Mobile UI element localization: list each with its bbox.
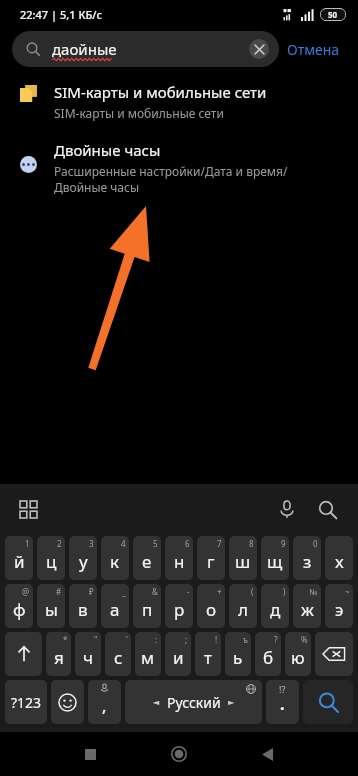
- staticText: й: [14, 550, 25, 573]
- button[interactable]: _: [101, 584, 129, 628]
- button[interactable]: №: [293, 584, 321, 628]
- staticText: !: [215, 634, 218, 645]
- button[interactable]: ?123: [5, 680, 47, 724]
- button[interactable]: даойные: [12, 31, 279, 67]
- button[interactable]: (: [229, 584, 257, 628]
- staticText: 0: [313, 538, 318, 549]
- button[interactable]: Home: [159, 734, 199, 774]
- staticText: 6: [185, 538, 190, 549]
- button[interactable]: 3: [69, 536, 97, 580]
- button[interactable]: 6: [165, 536, 193, 580]
- staticText: ": [94, 634, 98, 645]
- staticText: №: [309, 586, 318, 597]
- staticText: п: [142, 598, 153, 621]
- button[interactable]: 1: [5, 536, 33, 580]
- staticText: ►: [228, 698, 235, 707]
- staticText: ы: [45, 598, 58, 621]
- staticText: %: [301, 634, 308, 645]
- button[interactable]: Recents: [70, 734, 110, 774]
- button[interactable]: 9: [261, 536, 289, 580]
- button[interactable]: Search: [303, 680, 353, 724]
- staticText: :: [155, 634, 158, 645]
- button[interactable]: 5: [133, 536, 161, 580]
- button[interactable]: *: [46, 632, 71, 676]
- button[interactable]: ~: [325, 584, 353, 628]
- button[interactable]: 0: [293, 536, 321, 580]
- staticText: 22:47 | 5,1 КБ/с: [20, 7, 103, 22]
- staticText: б: [263, 646, 274, 669]
- button[interactable]: ": [75, 632, 101, 676]
- button[interactable]: &: [133, 584, 161, 628]
- staticText: 50: [328, 9, 338, 20]
- button[interactable]: ': [105, 632, 131, 676]
- staticText: !?: [279, 683, 286, 695]
- staticText: 8: [249, 538, 254, 549]
- staticText: х: [335, 550, 344, 573]
- button[interactable]: Shift: [5, 632, 42, 676]
- staticText: н: [174, 550, 185, 573]
- button[interactable]: SIM-карты и мобильные сети: [0, 78, 358, 126]
- button[interactable]: Двойные часы: [0, 136, 358, 199]
- staticText: щ: [267, 550, 283, 573]
- button[interactable]: Backspace: [315, 632, 353, 676]
- staticText: Отмена: [287, 40, 340, 59]
- button[interactable]: ◄: [125, 680, 262, 724]
- staticText: .: [280, 693, 285, 715]
- button[interactable]: %: [285, 632, 311, 676]
- staticText: в: [78, 598, 88, 621]
- button[interactable]: !: [195, 632, 221, 676]
- staticText: 1: [25, 538, 30, 549]
- staticText: ч: [83, 646, 94, 669]
- button[interactable]: @: [5, 584, 33, 628]
- button[interactable]: 8: [229, 536, 257, 580]
- button[interactable]: !?: [266, 680, 299, 724]
- staticText: г: [207, 550, 215, 573]
- staticText: е: [142, 550, 152, 573]
- button[interactable]: Search: [310, 492, 344, 526]
- button[interactable]: 4: [101, 536, 129, 580]
- button[interactable]: Back: [248, 734, 288, 774]
- button[interactable]: Keyboard menu: [12, 493, 44, 525]
- staticText: ф: [13, 598, 26, 621]
- staticText: ?: [274, 634, 278, 645]
- button[interactable]: ?: [255, 632, 281, 676]
- button[interactable]: х: [325, 536, 353, 580]
- staticText: с: [114, 646, 123, 669]
- staticText: ₽: [89, 586, 94, 597]
- button[interactable]: -: [165, 584, 193, 628]
- staticText: +: [217, 586, 222, 597]
- button[interactable]: :: [135, 632, 161, 676]
- button[interactable]: Voice input: [270, 492, 304, 526]
- staticText: 5: [153, 538, 158, 549]
- button[interactable]: ,: [88, 680, 121, 724]
- button[interactable]: ): [261, 584, 289, 628]
- button[interactable]: ъ: [225, 632, 251, 676]
- staticText: д: [270, 598, 281, 621]
- button[interactable]: [51, 680, 84, 724]
- staticText: т: [204, 646, 212, 669]
- staticText: *: [63, 634, 68, 645]
- staticText: #: [56, 586, 62, 597]
- staticText: ь: [233, 646, 243, 669]
- button[interactable]: #: [37, 584, 65, 628]
- staticText: л: [238, 598, 248, 621]
- button[interactable]: +: [197, 584, 225, 628]
- button[interactable]: ₽: [69, 584, 97, 628]
- staticText: ~: [345, 586, 350, 597]
- button[interactable]: 2: [37, 536, 65, 580]
- staticText: 3: [89, 538, 94, 549]
- staticText: _: [122, 586, 126, 597]
- staticText: э: [335, 598, 344, 621]
- button[interactable]: Clear search: [249, 39, 269, 59]
- button[interactable]: Отмена: [279, 34, 348, 65]
- staticText: ': [126, 634, 128, 645]
- staticText: &: [152, 586, 158, 597]
- staticText: 9: [281, 538, 286, 549]
- staticText: а: [110, 598, 120, 621]
- staticText: 2: [57, 538, 62, 549]
- staticText: р: [174, 598, 185, 621]
- staticText: ,: [102, 695, 107, 717]
- button[interactable]: 7: [197, 536, 225, 580]
- staticText: ю: [291, 646, 305, 669]
- button[interactable]: ;: [165, 632, 191, 676]
